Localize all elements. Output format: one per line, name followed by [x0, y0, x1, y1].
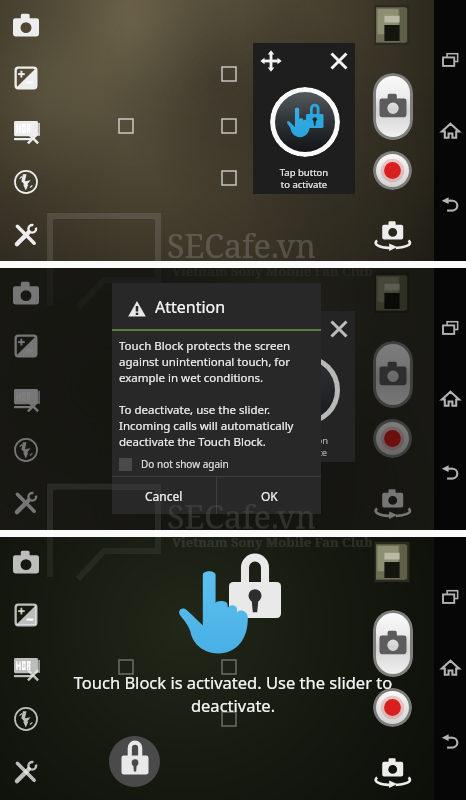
staticText: SECafe.vn — [167, 224, 316, 268]
staticText: Attention — [155, 296, 226, 318]
button[interactable]: Last photo — [373, 541, 411, 583]
button[interactable]: Record video — [373, 151, 412, 190]
button[interactable]: Recent apps — [434, 308, 466, 348]
button[interactable]: Take photo — [373, 73, 413, 140]
button[interactable]: Last photo — [373, 272, 411, 314]
button[interactable]: Settings — [5, 482, 47, 524]
staticText: Vietnam Sony Mobile Fan Club — [172, 262, 373, 280]
button[interactable]: Flash off — [5, 429, 47, 471]
button[interactable]: Move panel — [258, 48, 284, 74]
button[interactable]: Take photo — [373, 341, 413, 408]
button[interactable]: Home — [434, 378, 466, 418]
button[interactable]: Settings — [5, 214, 47, 256]
button[interactable]: Activate Touch Block — [270, 87, 340, 157]
staticText: Tap button to activate — [253, 434, 355, 459]
button[interactable]: Cancel — [112, 477, 216, 514]
staticText: OK — [261, 488, 278, 504]
button[interactable]: Switch camera — [372, 486, 412, 520]
button[interactable]: HDR off — [5, 379, 47, 421]
button[interactable]: Recent apps — [434, 577, 466, 617]
staticText: Tap button to activate — [253, 166, 355, 191]
staticText: Vietnam Sony Mobile Fan Club — [172, 533, 373, 551]
button[interactable]: Do not show again — [119, 448, 321, 480]
button[interactable]: Back — [434, 452, 466, 492]
button[interactable]: Exposure — [5, 594, 47, 636]
button[interactable]: Recent apps — [434, 40, 466, 80]
button[interactable]: Switch camera — [372, 218, 412, 252]
button[interactable]: Camera mode — [5, 542, 47, 584]
button[interactable]: Exposure — [5, 57, 47, 99]
button[interactable]: Home — [434, 110, 466, 150]
button[interactable]: Settings — [5, 751, 47, 793]
button[interactable]: OK — [217, 477, 321, 514]
staticText: Vietnam Sony Mobile Fan Club — [172, 532, 373, 550]
staticText: Touch Block protects the screen against … — [119, 338, 294, 450]
staticText: Cancel — [145, 488, 183, 504]
button[interactable]: Back — [434, 721, 466, 761]
button[interactable]: Home — [434, 647, 466, 687]
button[interactable]: Exposure — [5, 325, 47, 367]
button[interactable]: Camera mode — [5, 273, 47, 315]
button[interactable]: Unlock slider — [109, 736, 160, 787]
staticText: Vietnam Sony Mobile Fan Club — [172, 262, 373, 280]
staticText: Touch Block is activated. Use the slider… — [44, 671, 422, 717]
button[interactable]: Record video — [373, 688, 412, 727]
button[interactable]: HDR off — [5, 648, 47, 690]
staticText: Do not show again — [141, 457, 229, 471]
button[interactable]: Record video — [373, 419, 412, 458]
staticText: SECafe.vn — [167, 495, 316, 539]
button[interactable]: Camera mode — [5, 5, 47, 47]
button[interactable]: Flash off — [5, 698, 47, 740]
button[interactable]: Switch camera — [372, 755, 412, 789]
button[interactable]: HDR off — [5, 111, 47, 153]
staticText: SECafe.vn — [167, 224, 316, 268]
button[interactable]: Last photo — [373, 4, 411, 46]
staticText: SECafe.vn — [167, 494, 316, 538]
button[interactable]: Take photo — [373, 610, 413, 677]
button[interactable]: Back — [434, 184, 466, 224]
button[interactable]: Close — [326, 48, 352, 74]
button[interactable]: Flash off — [5, 161, 47, 203]
